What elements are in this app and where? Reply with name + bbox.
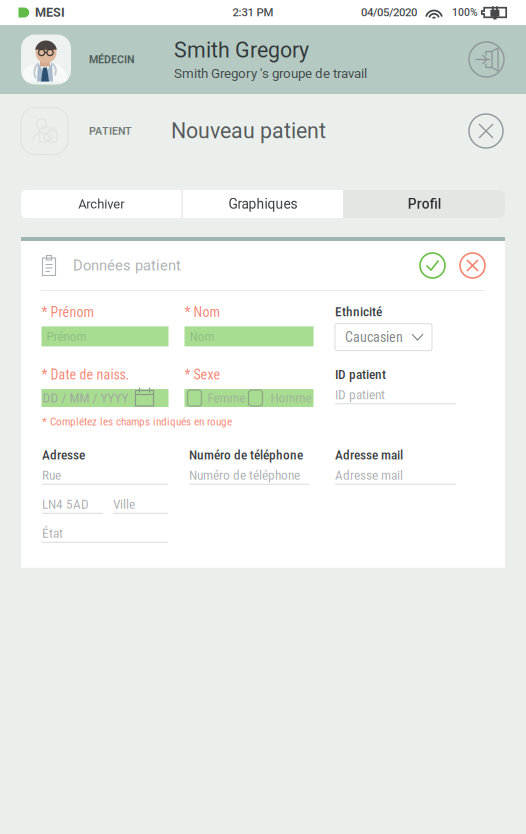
staticText: Données patient: [73, 257, 181, 274]
staticText: Adresse mail: [335, 447, 403, 463]
button[interactable]: Archiver: [21, 190, 182, 218]
button[interactable]: Profil: [344, 190, 505, 218]
staticText: Rue: [42, 467, 61, 483]
staticText: DD / MM / YYYY: [42, 390, 128, 406]
staticText: Caucasien: [345, 329, 403, 345]
staticText: * Sexe: [184, 367, 220, 383]
staticText: Femme: [207, 390, 245, 406]
staticText: LN4 5AD: [42, 496, 89, 512]
staticText: * Date de naiss.: [41, 367, 129, 383]
button[interactable]: Graphiques: [183, 190, 343, 218]
staticText: Archiver: [78, 196, 124, 212]
button[interactable]: Valider: [419, 252, 446, 279]
staticText: Homme: [270, 390, 311, 406]
staticText: ID patient: [335, 387, 385, 402]
staticText: État: [42, 525, 63, 541]
staticText: Adresse mail: [335, 467, 403, 483]
staticText: Smith Gregory 's groupe de travail: [174, 66, 367, 81]
staticText: * Prénom: [41, 304, 94, 320]
staticText: Nouveau patient: [171, 118, 326, 143]
button[interactable]: Annuler: [459, 252, 486, 279]
staticText: Graphiques: [228, 196, 297, 212]
button[interactable]: Se déconnecter: [468, 41, 505, 78]
staticText: 04/05/2020: [361, 6, 417, 19]
staticText: * Nom: [184, 304, 220, 320]
staticText: Smith Gregory: [174, 38, 309, 63]
staticText: Profil: [408, 196, 442, 212]
staticText: 2:31 PM: [232, 6, 273, 19]
staticText: Nom: [189, 329, 214, 344]
staticText: Ethnicité: [335, 304, 382, 320]
staticText: * Complétez les champs indiqués en rouge: [42, 415, 232, 428]
staticText: MESI: [35, 5, 65, 20]
staticText: PATIENT: [89, 125, 132, 137]
staticText: 100%: [452, 6, 478, 19]
staticText: Numéro de téléphone: [189, 447, 303, 463]
button[interactable]: Fermer: [468, 113, 504, 149]
staticText: Prénom: [46, 329, 86, 344]
staticText: Numéro de téléphone: [189, 467, 300, 483]
staticText: Adresse: [42, 447, 85, 463]
staticText: MÉDECIN: [89, 53, 135, 66]
staticText: Ville: [113, 496, 135, 512]
staticText: ID patient: [335, 367, 386, 382]
